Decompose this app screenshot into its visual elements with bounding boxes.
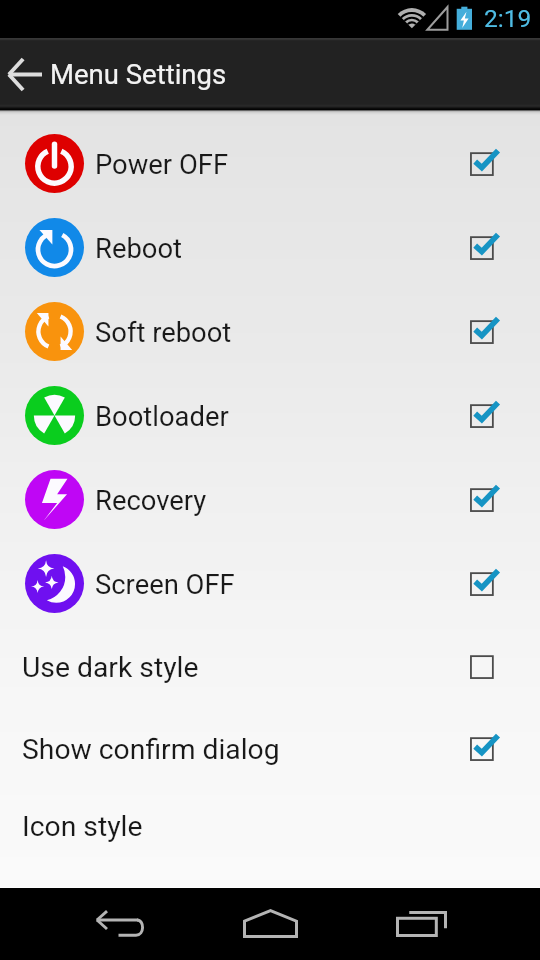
button[interactable]: Recent apps [346, 888, 496, 960]
button[interactable]: Home [195, 888, 345, 960]
button[interactable]: Reboot [0, 206, 540, 290]
button[interactable]: Use dark style [0, 627, 540, 707]
staticText: Bootloader [95, 401, 229, 433]
button[interactable]: Navigate up [0, 38, 49, 110]
button[interactable]: Screen OFF [0, 542, 540, 626]
button[interactable]: Power OFF [0, 122, 540, 206]
button[interactable]: Back [45, 888, 195, 960]
staticText: Power OFF [95, 149, 229, 181]
staticText: Reboot [95, 233, 182, 265]
staticText: Icon style [22, 810, 143, 843]
staticText: Use dark style [22, 651, 199, 684]
staticText: 2:19 [484, 4, 532, 33]
button[interactable]: Bootloader [0, 374, 540, 458]
staticText: Soft reboot [95, 317, 232, 349]
button[interactable]: Show confirm dialog [0, 709, 540, 789]
button[interactable]: Soft reboot [0, 290, 540, 374]
staticText: Show confirm dialog [22, 733, 280, 766]
staticText: Recovery [95, 485, 207, 517]
staticText: Menu Settings [50, 58, 227, 90]
button[interactable]: Recovery [0, 458, 540, 542]
staticText: Screen OFF [95, 569, 235, 601]
button[interactable]: Icon style [0, 786, 540, 866]
